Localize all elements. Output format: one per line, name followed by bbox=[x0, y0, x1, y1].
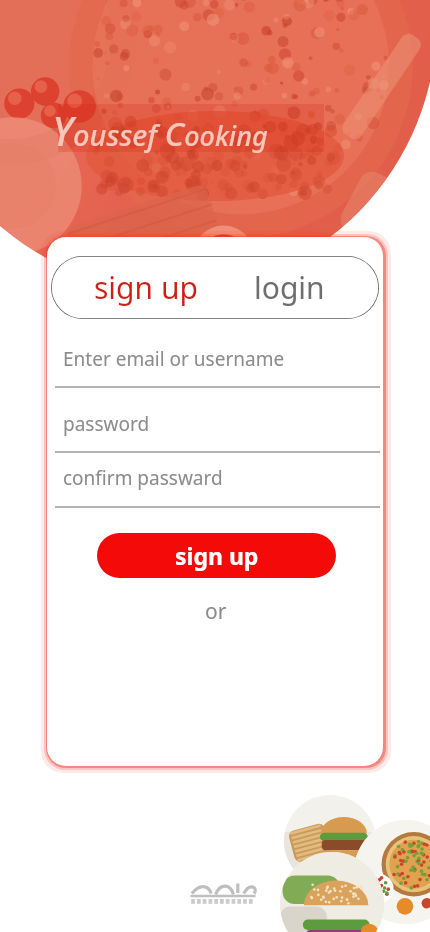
button[interactable]: sign up bbox=[73, 256, 219, 319]
button[interactable]: password bbox=[55, 411, 380, 453]
staticText: or bbox=[205, 597, 227, 626]
button[interactable]: login bbox=[221, 256, 357, 319]
staticText: password bbox=[63, 411, 150, 437]
staticText: login bbox=[254, 267, 325, 308]
staticText: sign up bbox=[94, 267, 198, 308]
button[interactable]: confirm passward bbox=[55, 465, 380, 508]
button[interactable]: Enter email or username bbox=[55, 346, 380, 388]
button[interactable]: sign up bbox=[97, 533, 336, 578]
staticText: Enter email or username bbox=[63, 346, 285, 372]
staticText: confirm passward bbox=[63, 465, 223, 491]
staticText: sign up bbox=[175, 540, 259, 571]
staticText: Youssef Cooking bbox=[52, 103, 268, 157]
